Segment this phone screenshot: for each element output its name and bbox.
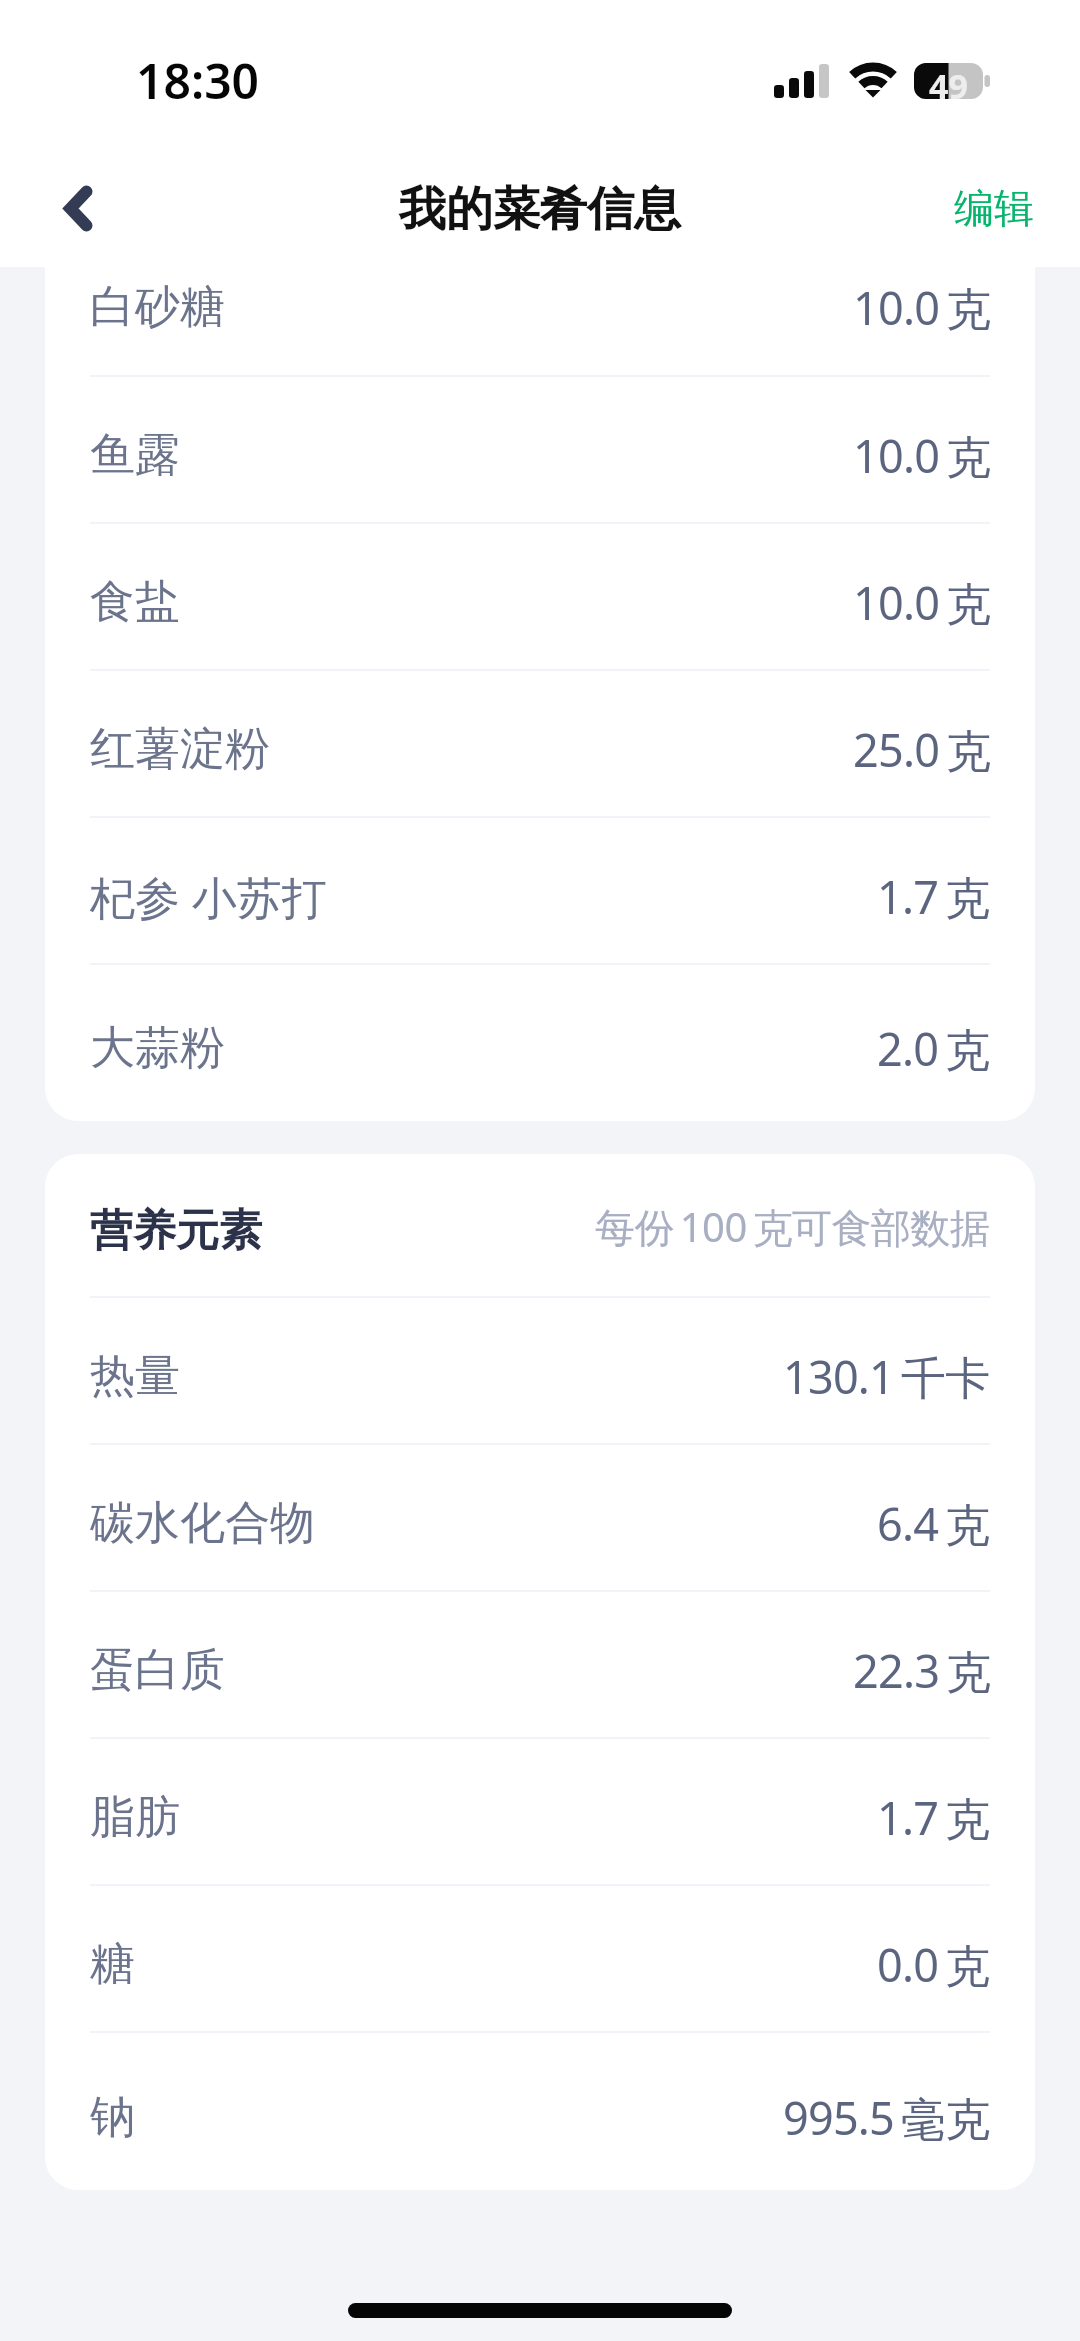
button[interactable]: 编辑 [908,154,1080,261]
staticText: 白砂糖 [90,279,225,336]
button[interactable]: 杞参 小苏打 [45,818,1035,965]
staticText: 脂肪 [90,1789,180,1846]
staticText: 糖 [90,1936,135,1993]
button[interactable]: 碳水化合物 [45,1445,1035,1592]
staticText: 营养元素 [90,1204,262,1258]
button[interactable]: 钠 [45,2033,1035,2190]
button[interactable]: 白砂糖 [45,267,1035,377]
staticText: 130.1 千卡 [783,1346,990,1407]
staticText: 10.0 克 [853,572,990,633]
staticText: 热量 [90,1348,180,1405]
button[interactable]: 鱼露 [45,377,1035,524]
staticText: 碳水化合物 [90,1495,315,1552]
button[interactable]: Back [23,155,133,262]
staticText: 每份 100 克可食部数据 [595,1199,990,1254]
button[interactable]: 热量 [45,1298,1035,1445]
staticText: 我的菜肴信息 [399,180,681,239]
button[interactable]: 食盐 [45,524,1035,671]
staticText: 18:30 [136,48,260,113]
button[interactable]: 糖 [45,1886,1035,2033]
staticText: 995.5 毫克 [783,2087,990,2148]
staticText: 49 [929,63,968,99]
staticText: 钠 [90,2089,135,2146]
staticText: 蛋白质 [90,1642,225,1699]
staticText: 鱼露 [90,427,180,484]
staticText: 10.0 克 [853,277,990,338]
staticText: 1.7 克 [877,866,990,927]
button[interactable]: 蛋白质 [45,1592,1035,1739]
button[interactable]: 脂肪 [45,1739,1035,1886]
staticText: 22.3 克 [853,1640,990,1701]
staticText: 杞参 小苏打 [90,866,327,927]
staticText: 0.0 克 [877,1934,990,1995]
staticText: 编辑 [954,183,1034,233]
staticText: 25.0 克 [853,719,990,780]
staticText: 10.0 克 [853,425,990,486]
staticText: 1.7 克 [877,1787,990,1848]
staticText: 食盐 [90,574,180,631]
staticText: 2.0 克 [877,1018,990,1079]
button[interactable]: 大蒜粉 [45,965,1035,1121]
staticText: 6.4 克 [877,1493,990,1554]
staticText: 红薯淀粉 [90,721,270,778]
staticText: 大蒜粉 [90,1020,225,1077]
button[interactable]: 红薯淀粉 [45,671,1035,818]
